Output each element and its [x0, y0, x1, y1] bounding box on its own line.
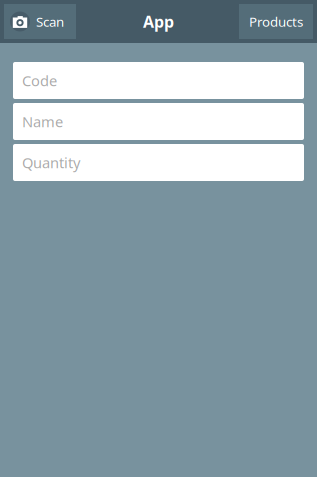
button[interactable]: Name: [13, 103, 304, 140]
staticText: Scan: [36, 13, 64, 30]
staticText: Products: [249, 13, 303, 30]
button[interactable]: Code: [13, 62, 304, 99]
staticText: Quantity: [22, 153, 80, 172]
button[interactable]: Quantity: [13, 144, 304, 181]
staticText: Name: [22, 112, 63, 131]
staticText: Code: [22, 71, 57, 90]
button[interactable]: Scan: [4, 4, 76, 39]
staticText: App: [143, 11, 174, 32]
button[interactable]: Products: [239, 4, 313, 39]
